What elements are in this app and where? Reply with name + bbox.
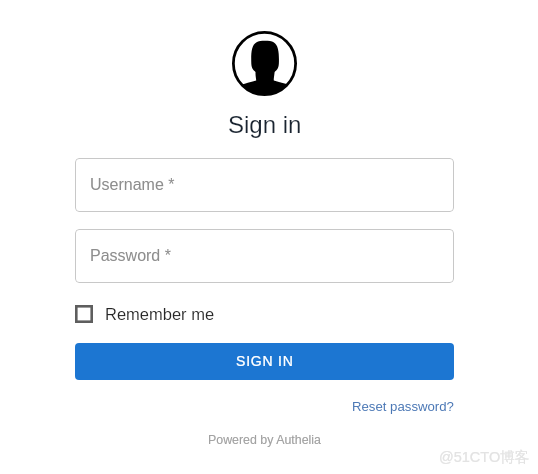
staticText: @51CTO博客: [439, 448, 530, 466]
button[interactable]: Remember me: [75, 303, 215, 325]
staticText: Username *: [90, 176, 175, 194]
staticText: Powered by Authelia: [208, 433, 321, 447]
button[interactable]: SIGN IN: [75, 343, 454, 380]
button[interactable]: Password *: [75, 229, 454, 283]
button[interactable]: Username *: [75, 158, 454, 212]
staticText: SIGN IN: [236, 353, 294, 369]
other: Account avatar: [232, 31, 297, 96]
button[interactable]: Reset password?: [352, 399, 454, 414]
staticText: Password *: [90, 247, 171, 265]
staticText: Sign in: [228, 111, 302, 138]
staticText: Remember me: [105, 305, 215, 323]
